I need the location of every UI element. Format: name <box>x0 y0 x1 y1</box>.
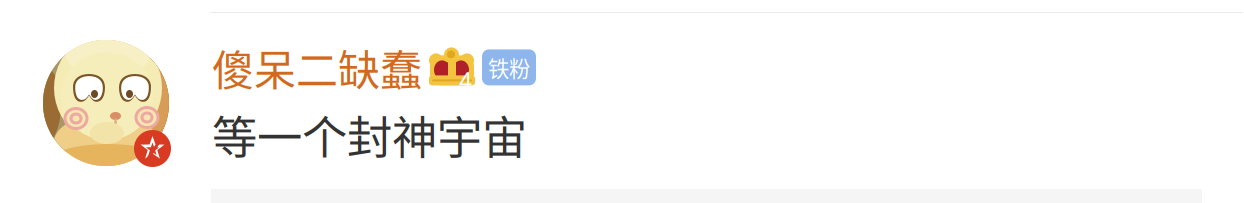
staticText: 铁粉 <box>488 52 530 83</box>
staticText: 傻呆二缺蠢 <box>212 37 422 98</box>
button[interactable]: User avatar <box>43 40 169 166</box>
staticText: 等一个封神宇宙 <box>212 102 527 168</box>
button[interactable]: 傻呆二缺蠢 <box>212 37 536 98</box>
staticText: 4 <box>459 62 472 97</box>
